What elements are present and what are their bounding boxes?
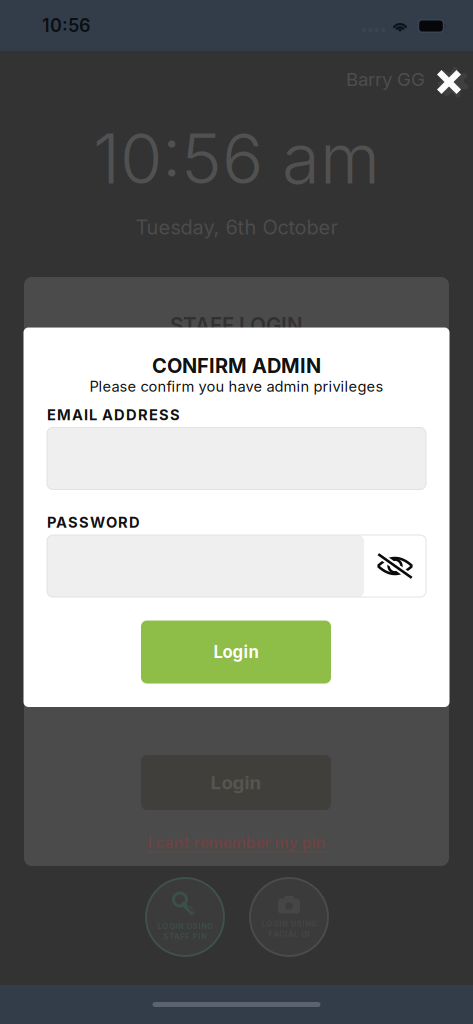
- staticText: 4: [102, 523, 117, 550]
- staticText: Login: [213, 642, 258, 662]
- button[interactable]: LOGIN USING STAFF PIN: [145, 877, 225, 957]
- staticText: 9: [356, 580, 370, 607]
- staticText: Barry GG: [346, 68, 425, 91]
- staticText: 1: [105, 466, 114, 493]
- button[interactable]: 4: [46, 502, 174, 559]
- button[interactable]: Close: [429, 61, 469, 98]
- staticText: CONFIRM ADMIN: [152, 353, 321, 378]
- staticText: 6: [356, 523, 370, 550]
- staticText: STAFF PIN: [164, 932, 206, 941]
- button[interactable]: 3: [299, 445, 427, 502]
- staticText: 10:56: [42, 15, 91, 36]
- button[interactable]: Login: [141, 755, 331, 810]
- staticText: PASSWORD: [47, 513, 140, 531]
- staticText: LOGIN USING: [158, 922, 212, 931]
- button[interactable]: 7: [46, 559, 174, 616]
- button[interactable]: Show password: [364, 535, 426, 597]
- button[interactable]: Login: [141, 620, 331, 683]
- staticText: 8: [229, 580, 243, 607]
- staticText: 0: [229, 637, 243, 664]
- button[interactable]: 5: [174, 502, 299, 559]
- button[interactable]: I cant remember my pin: [147, 833, 325, 852]
- staticText: Tuesday, 6th October: [135, 215, 337, 239]
- staticText: 3: [356, 466, 370, 493]
- button[interactable]: Delete: [299, 616, 427, 673]
- staticText: 10:56 am: [93, 117, 380, 200]
- staticText: 2: [229, 466, 243, 493]
- staticText: Login: [210, 771, 261, 794]
- staticText: 7: [103, 580, 116, 607]
- staticText: Please confirm you have admin privileges: [89, 377, 383, 395]
- staticText: 5: [230, 523, 243, 550]
- staticText: EMAIL ADDRESS: [47, 406, 180, 424]
- staticText: STAFF LOGIN: [170, 313, 303, 338]
- button[interactable]: 1: [46, 445, 174, 502]
- staticText: Delete: [329, 637, 396, 664]
- button[interactable]: 0: [174, 616, 299, 673]
- button[interactable]: 2: [174, 445, 299, 502]
- staticText: LOGIN USING: [262, 919, 316, 928]
- button[interactable]: 9: [299, 559, 427, 616]
- staticText: FACIAL ID: [269, 930, 309, 938]
- button[interactable]: 8: [174, 559, 299, 616]
- button[interactable]: Clear: [46, 616, 174, 673]
- staticText: I cant remember my pin: [147, 833, 325, 852]
- button[interactable]: LOGIN USING FACIAL ID: [249, 877, 329, 957]
- button[interactable]: 6: [299, 502, 427, 559]
